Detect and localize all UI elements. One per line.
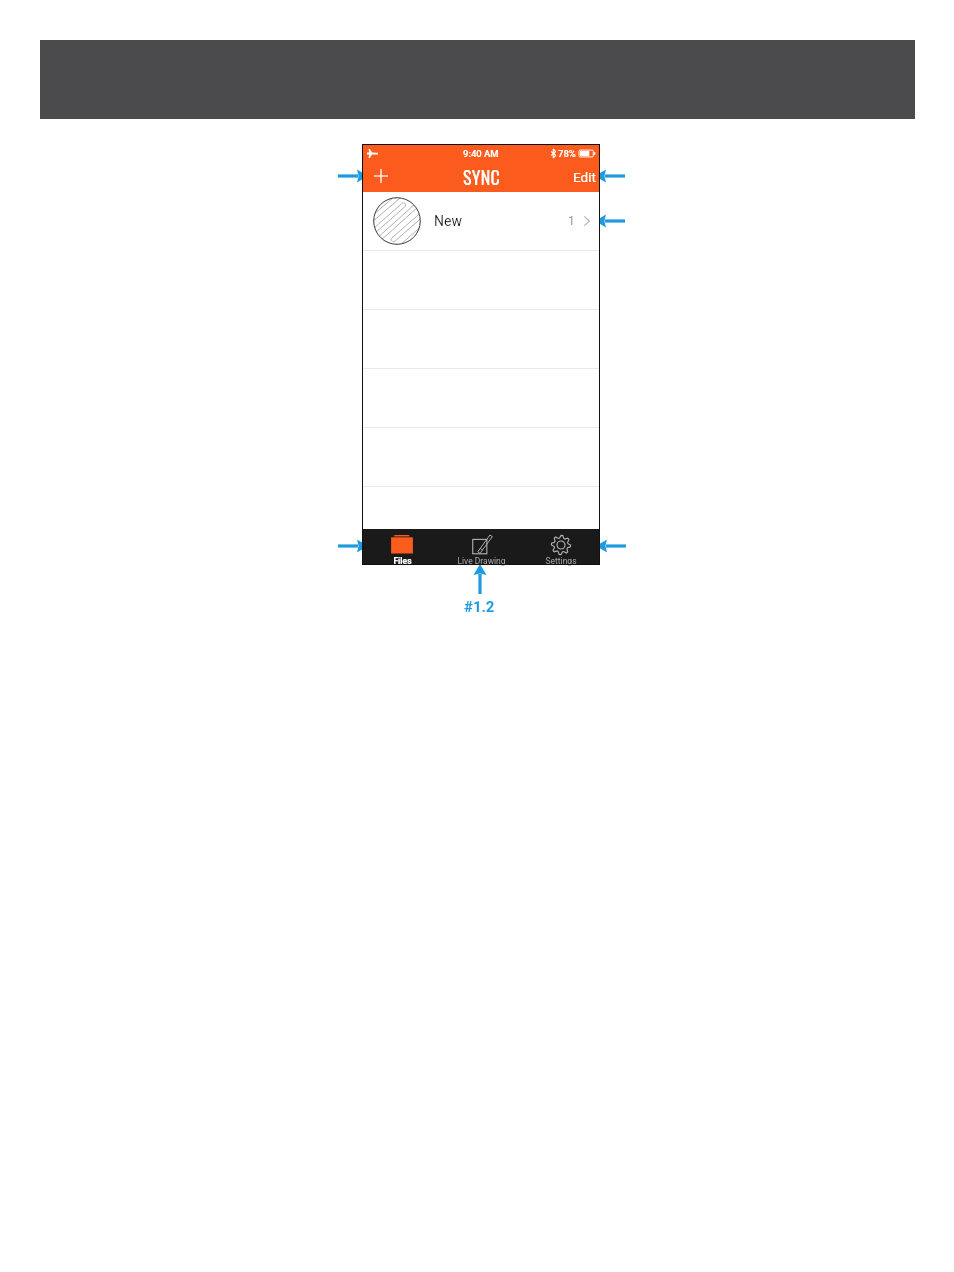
button[interactable] xyxy=(362,428,600,486)
button[interactable]: Edit xyxy=(565,165,600,189)
button[interactable]: Files xyxy=(362,529,442,565)
staticText: #1.2 xyxy=(464,598,495,616)
button[interactable] xyxy=(362,310,600,368)
button[interactable]: New xyxy=(362,192,600,250)
staticText: 9:40 AM xyxy=(463,148,499,159)
button[interactable] xyxy=(362,487,600,529)
staticText: New xyxy=(434,213,462,229)
staticText: Settings xyxy=(545,556,577,566)
button[interactable] xyxy=(362,251,600,309)
staticText: SYNC xyxy=(463,164,501,191)
staticText: 78% xyxy=(558,148,576,159)
button[interactable]: Live Drawing xyxy=(442,529,521,565)
staticText: Edit xyxy=(573,169,596,185)
button[interactable]: Settings xyxy=(521,529,600,565)
staticText: 1 xyxy=(568,214,575,228)
staticText: Live Drawing xyxy=(457,556,506,566)
button[interactable]: Add new sketch xyxy=(367,162,395,190)
staticText: Files xyxy=(393,556,412,566)
button[interactable] xyxy=(362,369,600,427)
